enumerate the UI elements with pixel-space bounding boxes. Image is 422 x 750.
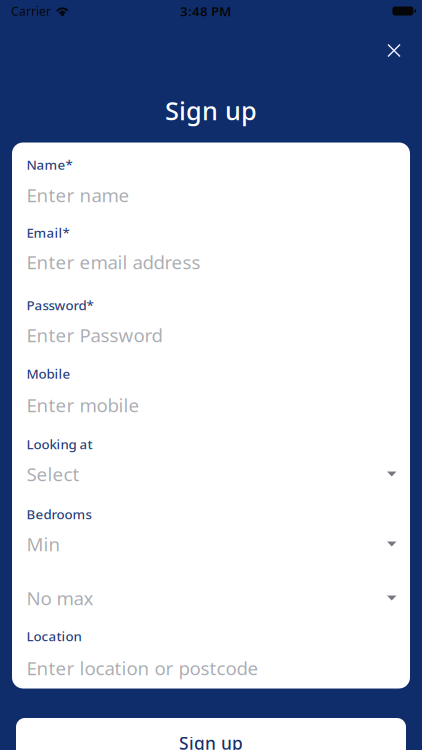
staticText: Looking at (26, 435, 92, 453)
staticText: Enter location or postcode (26, 656, 258, 680)
staticText: Select (26, 462, 79, 486)
staticText: Enter mobile (26, 393, 139, 417)
staticText: Enter Password (26, 323, 162, 347)
button[interactable]: Enter mobile (26, 393, 396, 417)
staticText: Name* (26, 156, 72, 173)
button[interactable]: No max (26, 586, 396, 610)
staticText: Bedrooms (26, 505, 91, 523)
staticText: Password* (26, 296, 93, 314)
button[interactable]: Select (26, 462, 396, 486)
staticText: No max (26, 586, 93, 610)
button[interactable]: Enter location or postcode (26, 656, 396, 680)
staticText: Location (26, 627, 81, 645)
button[interactable]: Enter email address (26, 250, 396, 274)
staticText: Email* (26, 224, 69, 241)
button[interactable] (372, 28, 416, 72)
button[interactable]: Enter Password (26, 323, 396, 347)
staticText: Sign up (179, 731, 243, 750)
staticText: Sign up (165, 94, 257, 127)
staticText: Mobile (26, 365, 70, 382)
staticText: 3:48 PM (180, 2, 231, 20)
staticText: Enter name (26, 183, 129, 207)
staticText: Carrier (11, 3, 51, 19)
staticText: Min (26, 532, 60, 556)
button[interactable]: Min (26, 532, 396, 556)
staticText: Enter email address (26, 250, 200, 274)
button[interactable]: Enter name (26, 183, 396, 207)
button[interactable]: Sign up (16, 718, 406, 750)
